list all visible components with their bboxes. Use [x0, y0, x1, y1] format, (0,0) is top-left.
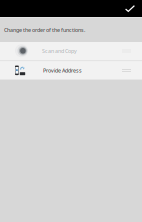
button[interactable]: Provide Address [0, 61, 142, 79]
staticText: Scan and Copy [42, 47, 77, 55]
button[interactable]: Scan and Copy [0, 42, 142, 60]
staticText: Provide Address [43, 67, 82, 74]
button[interactable]: Done [118, 0, 142, 17]
staticText: Change the order of the functions. [4, 26, 85, 34]
